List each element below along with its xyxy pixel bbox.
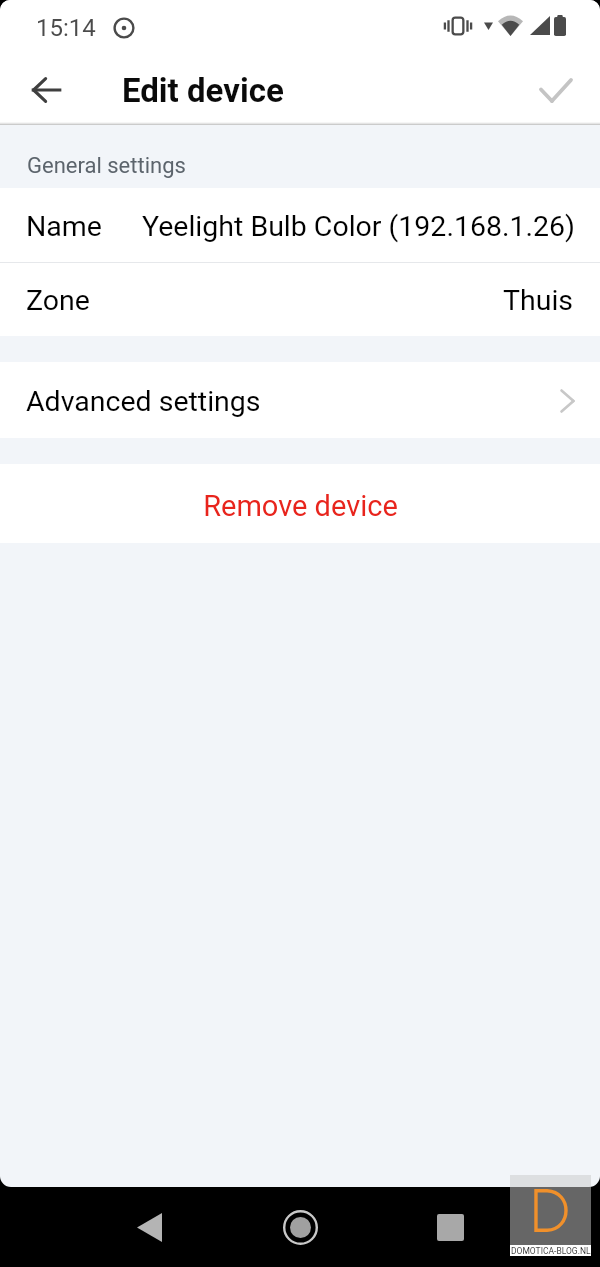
button[interactable]: Recent apps: [420, 1197, 480, 1257]
staticText: Edit device: [122, 71, 284, 110]
staticText: Remove device: [203, 489, 398, 523]
button[interactable]: Back: [0, 55, 92, 125]
staticText: 15:14: [36, 14, 96, 42]
staticText: Advanced settings: [26, 385, 261, 418]
button[interactable]: Back: [119, 1197, 179, 1257]
staticText: Zone: [26, 284, 90, 317]
staticText: General settings: [27, 153, 186, 179]
button[interactable]: Remove device: [0, 464, 600, 543]
button[interactable]: Zone: [0, 263, 600, 336]
staticText: DOMOTICA-BLOG.NL: [511, 1246, 591, 1256]
button[interactable]: Name: [0, 188, 600, 262]
button[interactable]: Advanced settings: [0, 362, 600, 438]
staticText: Name: [26, 210, 102, 243]
button[interactable]: Save: [512, 55, 600, 125]
staticText: Yeelight Bulb Color (192.168.1.26): [142, 210, 575, 243]
button[interactable]: Home: [270, 1197, 330, 1257]
staticText: Thuis: [503, 284, 574, 317]
